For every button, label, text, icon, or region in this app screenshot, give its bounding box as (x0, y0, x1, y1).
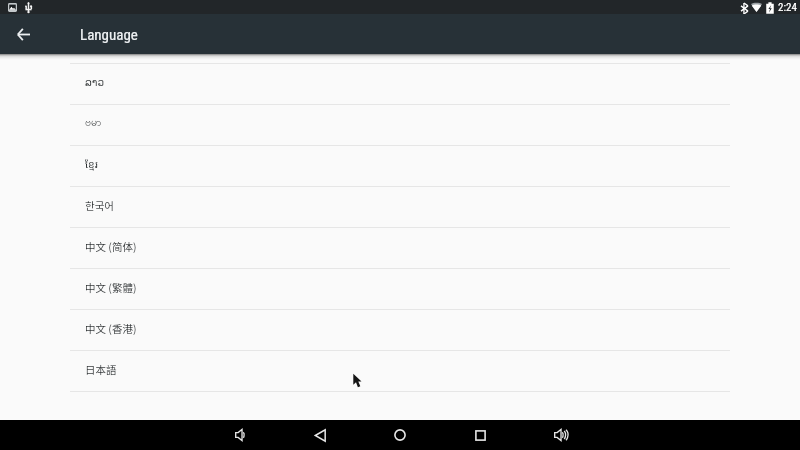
button[interactable]: Back (11, 22, 35, 46)
staticText: 中文 (简体) (85, 239, 137, 254)
staticText: 2:24 (778, 1, 797, 14)
button[interactable]: ລາວ (0, 63, 800, 104)
button[interactable]: 中文 (繁體) (0, 268, 800, 309)
staticText: ဗမာ (85, 116, 102, 131)
button[interactable]: ဗမာ (0, 104, 800, 145)
button[interactable]: ខ្មែរ (0, 145, 800, 186)
staticText: ខ្មែរ (85, 157, 98, 171)
staticText: ລາວ (85, 76, 105, 88)
button[interactable]: Back (310, 425, 330, 445)
staticText: 한국어 (85, 198, 114, 213)
button[interactable]: 中文 (简体) (0, 227, 800, 268)
button[interactable]: Home (390, 425, 410, 445)
button[interactable]: Volume down (230, 425, 250, 445)
staticText: Language (80, 26, 138, 44)
staticText: 日本語 (85, 362, 117, 377)
staticText: 中文 (繁體) (85, 280, 137, 295)
staticText: 中文 (香港) (85, 321, 137, 336)
button[interactable]: Recents (470, 425, 490, 445)
button[interactable]: Volume up (550, 425, 570, 445)
button[interactable]: 中文 (香港) (0, 309, 800, 350)
button[interactable]: 日本語 (0, 350, 800, 391)
button[interactable]: 한국어 (0, 186, 800, 227)
